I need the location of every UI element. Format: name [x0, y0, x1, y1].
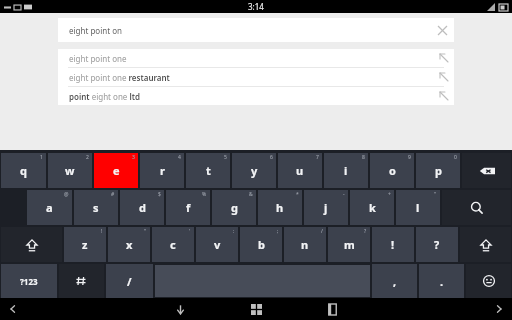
button[interactable]: Change language — [59, 264, 104, 298]
staticText: s — [93, 200, 99, 215]
staticText: $ — [158, 191, 161, 198]
button[interactable]: Insert suggestion — [434, 49, 454, 67]
staticText: % — [202, 191, 207, 198]
button[interactable]: c — [152, 227, 194, 262]
staticText: , — [393, 274, 397, 289]
staticText: # — [111, 191, 115, 198]
staticText: 0 — [454, 154, 457, 161]
staticText: ?123 — [20, 276, 38, 287]
staticText: + — [388, 191, 391, 198]
button[interactable]: , — [372, 264, 417, 298]
staticText: / — [127, 274, 132, 289]
button[interactable]: Emoji — [466, 264, 511, 298]
button[interactable]: f — [166, 190, 210, 225]
button[interactable]: x — [108, 227, 150, 262]
button[interactable]: w — [48, 153, 92, 188]
staticText: 4 — [178, 154, 181, 161]
staticText: eight point on — [69, 25, 122, 36]
staticText: k — [369, 200, 376, 215]
staticText: o — [389, 163, 396, 178]
staticText: t — [206, 163, 211, 178]
button[interactable]: h — [258, 190, 302, 225]
button[interactable]: Shift — [460, 227, 511, 262]
button[interactable]: ?123 — [1, 264, 57, 298]
button[interactable]: n — [284, 227, 326, 262]
staticText: 7 — [316, 154, 319, 161]
button[interactable]: Shift — [1, 227, 62, 262]
staticText: * — [296, 191, 299, 198]
staticText: 6 — [270, 154, 273, 161]
button[interactable]: q — [1, 153, 46, 188]
button[interactable]: Recent apps — [317, 298, 347, 320]
staticText: " — [434, 191, 437, 198]
button[interactable]: a — [27, 190, 72, 225]
button[interactable]: ! — [372, 227, 414, 262]
button[interactable]: u — [278, 153, 322, 188]
button[interactable]: ? — [416, 227, 458, 262]
staticText: point eight one ltd — [69, 91, 140, 102]
button[interactable]: k — [350, 190, 394, 225]
button[interactable]: Back — [0, 298, 26, 320]
staticText: 9 — [408, 154, 411, 161]
staticText: b — [258, 237, 265, 252]
staticText: j — [324, 200, 328, 215]
button[interactable]: Backspace — [462, 153, 511, 188]
staticText: . — [440, 274, 444, 289]
staticText: 1 — [40, 154, 43, 161]
staticText: ! — [101, 228, 103, 235]
button[interactable]: z — [64, 227, 106, 262]
button[interactable]: Insert suggestion — [434, 68, 454, 86]
button[interactable]: p — [416, 153, 460, 188]
button[interactable]: m — [328, 227, 370, 262]
button[interactable]: d — [120, 190, 164, 225]
staticText: : — [233, 228, 235, 235]
button[interactable]: / — [106, 264, 153, 298]
staticText: l — [416, 200, 420, 215]
button[interactable]: eight point one restaurant — [58, 68, 454, 86]
staticText: x — [126, 237, 133, 252]
button[interactable]: . — [419, 264, 464, 298]
staticText: 3 — [132, 154, 135, 161]
button[interactable]: g — [212, 190, 256, 225]
button[interactable]: Forward — [486, 298, 512, 320]
button[interactable]: eight point one — [58, 49, 454, 67]
staticText: ' — [189, 228, 191, 235]
button[interactable]: l — [396, 190, 440, 225]
staticText: ! — [391, 237, 395, 252]
button[interactable]: Home — [241, 298, 271, 320]
staticText: ? — [434, 237, 440, 252]
button[interactable]: e — [94, 153, 138, 188]
button[interactable]: b — [240, 227, 282, 262]
button[interactable]: o — [370, 153, 414, 188]
staticText: g — [231, 200, 238, 215]
button[interactable]: v — [196, 227, 238, 262]
button[interactable]: s — [74, 190, 118, 225]
staticText: w — [65, 163, 75, 178]
staticText: h — [276, 200, 284, 215]
staticText: z — [82, 237, 88, 252]
button[interactable]: eight point on — [58, 18, 454, 42]
staticText: eight point one — [69, 53, 127, 64]
button[interactable]: Clear query — [430, 18, 454, 42]
staticText: d — [139, 200, 146, 215]
staticText: ; — [277, 228, 279, 235]
staticText: v — [214, 237, 221, 252]
staticText: 3:14 — [248, 1, 264, 12]
button[interactable]: y — [232, 153, 276, 188]
button[interactable]: Search — [442, 190, 511, 225]
staticText: & — [249, 191, 253, 198]
button[interactable]: Insert suggestion — [434, 87, 454, 105]
button[interactable]: point eight one ltd — [58, 87, 454, 105]
staticText: " — [144, 228, 147, 235]
staticText: y — [251, 163, 258, 178]
button[interactable]: j — [304, 190, 348, 225]
button[interactable]: i — [324, 153, 368, 188]
staticText: e — [113, 163, 120, 178]
button[interactable]: Hide keyboard — [165, 298, 195, 320]
staticText: 8 — [362, 154, 365, 161]
button[interactable]: r — [140, 153, 184, 188]
button[interactable]: t — [186, 153, 230, 188]
staticText: p — [435, 163, 442, 178]
staticText: f — [186, 200, 191, 215]
